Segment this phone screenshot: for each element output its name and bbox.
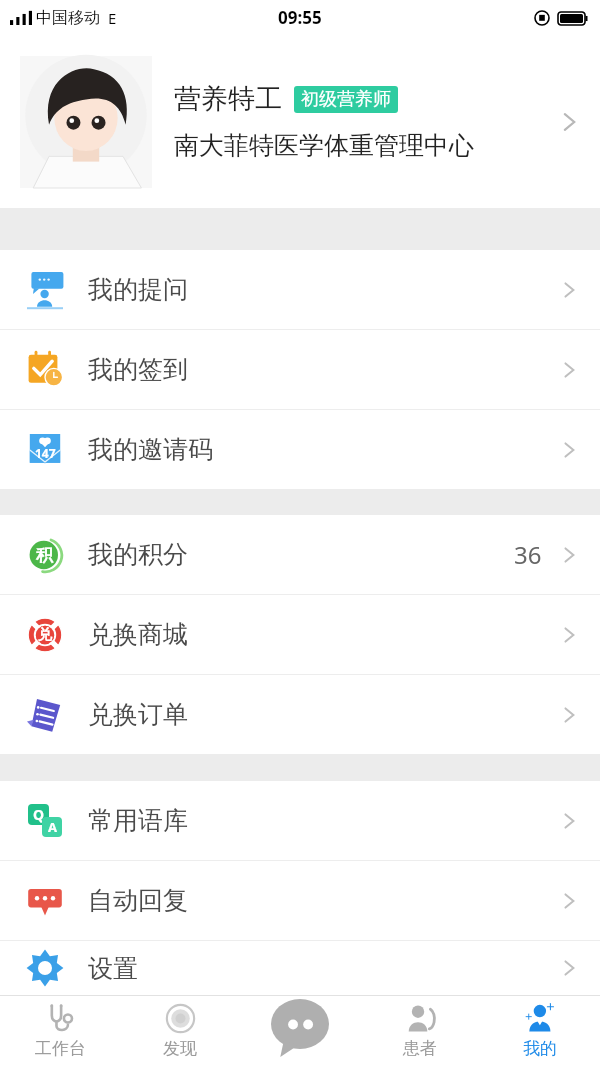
staticText: Q bbox=[33, 805, 45, 824]
staticText: A bbox=[48, 818, 57, 836]
button[interactable]: 我的 bbox=[480, 995, 600, 1066]
staticText: 自动回复 bbox=[88, 885, 188, 916]
staticText: 工作台 bbox=[35, 1038, 86, 1059]
button[interactable]: Q bbox=[0, 781, 600, 860]
staticText: 36 bbox=[514, 538, 542, 571]
button[interactable]: 消息 bbox=[240, 995, 360, 1066]
button[interactable]: 营养特工 bbox=[0, 35, 600, 208]
button[interactable]: 我的提问 bbox=[0, 250, 600, 329]
staticText: 我的提问 bbox=[88, 274, 188, 305]
staticText: 设置 bbox=[88, 953, 138, 984]
staticText: 兑换商城 bbox=[88, 619, 188, 650]
staticText: 09:55 bbox=[278, 6, 322, 29]
staticText: 我的签到 bbox=[88, 354, 188, 385]
staticText: 兑 bbox=[38, 626, 52, 644]
staticText: 我的邀请码 bbox=[88, 434, 213, 465]
button[interactable]: 患者 bbox=[360, 995, 480, 1066]
button[interactable]: 发现 bbox=[120, 995, 240, 1066]
button[interactable]: 自动回复 bbox=[0, 861, 600, 940]
staticText: 常用语库 bbox=[88, 805, 188, 836]
button[interactable]: 设置 bbox=[0, 941, 600, 995]
button[interactable]: 工作台 bbox=[0, 995, 120, 1066]
staticText: 147 bbox=[35, 445, 56, 461]
staticText: 患者 bbox=[403, 1038, 437, 1059]
staticText: 积 bbox=[36, 545, 53, 566]
staticText: 中国移动 bbox=[36, 8, 100, 28]
button[interactable]: 积 bbox=[0, 515, 600, 594]
button[interactable]: 我的签到 bbox=[0, 330, 600, 409]
staticText: E bbox=[108, 8, 117, 28]
staticText: 营养特工 bbox=[174, 82, 282, 116]
staticText: 发现 bbox=[163, 1038, 197, 1059]
staticText: 我的 bbox=[523, 1038, 557, 1059]
staticText: 南大菲特医学体重管理中心 bbox=[174, 130, 474, 161]
staticText: 兑换订单 bbox=[88, 699, 188, 730]
button[interactable]: 兑换订单 bbox=[0, 675, 600, 754]
staticText: 初级营养师 bbox=[301, 88, 391, 111]
staticText: 我的积分 bbox=[88, 539, 188, 570]
button[interactable]: 147 bbox=[0, 410, 600, 489]
button[interactable]: 兑 bbox=[0, 595, 600, 674]
